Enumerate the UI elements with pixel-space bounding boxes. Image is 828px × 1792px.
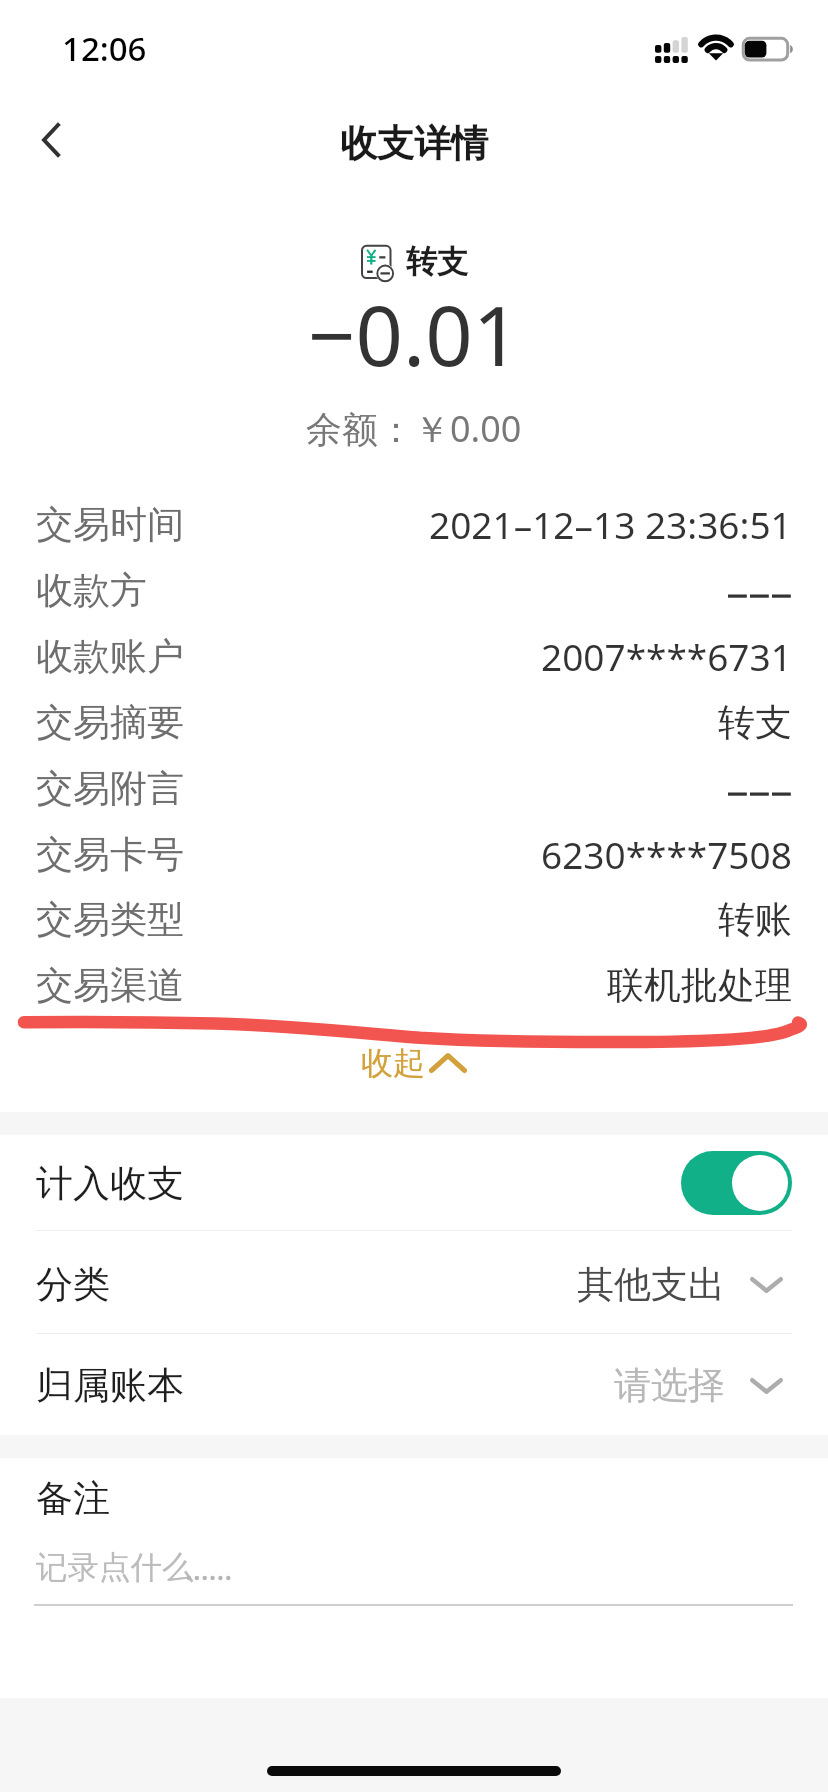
staticText: 余额：￥0.00 bbox=[306, 404, 522, 453]
staticText: 交易附言 bbox=[36, 765, 184, 812]
staticText: 计入收支 bbox=[36, 1160, 184, 1207]
staticText: 交易摘要 bbox=[36, 699, 184, 746]
staticText: −0.01 bbox=[308, 277, 521, 390]
button[interactable]: 收款方 bbox=[0, 557, 828, 623]
staticText: 联机批处理 bbox=[607, 962, 792, 1009]
button[interactable]: 归属账本 bbox=[0, 1353, 828, 1418]
button[interactable]: 交易类型 bbox=[0, 886, 828, 952]
staticText: 12:06 bbox=[62, 26, 147, 71]
staticText: 转支 bbox=[718, 699, 792, 746]
staticText: 收款方 bbox=[36, 567, 147, 614]
staticText: 6230****7508 bbox=[541, 829, 792, 879]
staticText: 归属账本 bbox=[36, 1362, 184, 1409]
button[interactable]: 交易摘要 bbox=[0, 689, 828, 755]
button[interactable]: 交易时间 bbox=[0, 491, 828, 557]
staticText: 交易类型 bbox=[36, 896, 184, 943]
button[interactable]: 记录点什么 bbox=[34, 1538, 793, 1606]
button[interactable]: 收款账户 bbox=[0, 623, 828, 689]
staticText: 收款账户 bbox=[36, 633, 184, 680]
staticText: 交易时间 bbox=[36, 501, 184, 548]
staticText: 转支 bbox=[406, 242, 468, 281]
staticText: 其他支出 bbox=[577, 1261, 725, 1308]
staticText: 分类 bbox=[36, 1261, 110, 1308]
button[interactable]: 交易渠道 bbox=[0, 952, 828, 1018]
button[interactable]: 收起 bbox=[0, 1032, 828, 1094]
staticText: 交易卡号 bbox=[36, 831, 184, 878]
button[interactable]: 分类 bbox=[0, 1252, 828, 1317]
staticText: 备注 bbox=[36, 1475, 110, 1522]
button[interactable]: 计入收支 bbox=[36, 1135, 792, 1231]
staticText: 转账 bbox=[718, 896, 792, 943]
staticText: 收起 bbox=[361, 1043, 425, 1083]
button[interactable]: 交易卡号 bbox=[0, 821, 828, 887]
staticText: 2021–12–13 23:36:51 bbox=[429, 499, 792, 549]
button[interactable]: 交易附言 bbox=[0, 755, 828, 821]
staticText: 请选择 bbox=[614, 1362, 725, 1409]
button[interactable]: 返回 bbox=[6, 92, 98, 184]
staticText: 记录点什么 bbox=[36, 1548, 194, 1588]
staticText: 2007****6731 bbox=[541, 631, 792, 681]
staticText: 交易渠道 bbox=[36, 962, 184, 1009]
staticText: 收支详情 bbox=[340, 120, 488, 167]
